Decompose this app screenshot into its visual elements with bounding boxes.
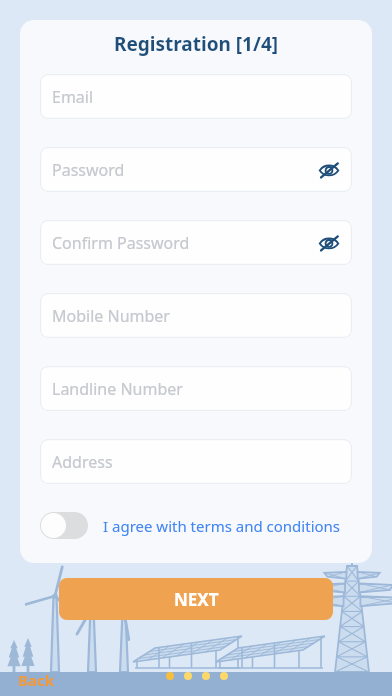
- staticText: Mobile Number: [52, 305, 170, 327]
- staticText: Email: [52, 86, 94, 108]
- staticText: Password: [52, 159, 125, 181]
- button[interactable]: I agree with terms and conditions: [40, 512, 347, 539]
- staticText: NEXT: [174, 588, 219, 611]
- staticText: Landline Number: [52, 378, 183, 400]
- button[interactable]: Mobile Number: [40, 293, 352, 338]
- button[interactable]: Show password: [314, 228, 344, 258]
- button[interactable]: NEXT: [59, 578, 333, 620]
- staticText: I agree with terms and conditions: [103, 516, 341, 536]
- button[interactable]: Back: [14, 668, 59, 692]
- button[interactable]: Landline Number: [40, 366, 352, 411]
- staticText: Confirm Password: [52, 232, 190, 254]
- button[interactable]: Email: [40, 74, 352, 119]
- staticText: Address: [52, 451, 113, 473]
- staticText: Back: [18, 670, 55, 690]
- button[interactable]: Address: [40, 439, 352, 484]
- button[interactable]: Show password: [314, 155, 344, 185]
- button[interactable]: Password: [40, 147, 352, 192]
- staticText: Registration [1/4]: [20, 31, 372, 57]
- button[interactable]: Confirm Password: [40, 220, 352, 265]
